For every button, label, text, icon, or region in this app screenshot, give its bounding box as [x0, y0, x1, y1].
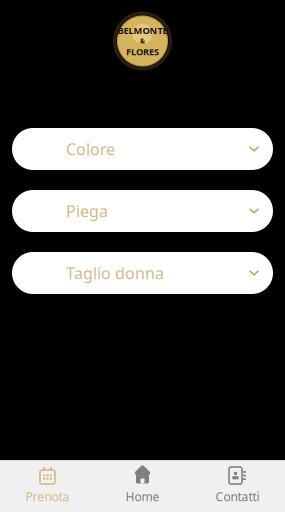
staticText: Home	[125, 488, 159, 504]
staticText: Colore	[66, 138, 115, 160]
staticText: &	[140, 37, 145, 45]
staticText: Taglio donna	[66, 262, 164, 284]
button[interactable]: Piega	[12, 190, 273, 232]
button[interactable]: Prenota	[0, 460, 95, 512]
button[interactable]: Colore	[12, 128, 273, 170]
button[interactable]: Contatti	[190, 460, 285, 512]
button[interactable]: Taglio donna	[12, 252, 273, 294]
staticText: BELMONTE	[117, 24, 167, 37]
staticText: Contatti	[215, 488, 259, 504]
staticText: FLORES	[126, 45, 159, 58]
staticText: Piega	[66, 200, 108, 222]
staticText: Prenota	[25, 488, 69, 504]
button[interactable]: Home	[95, 460, 190, 512]
